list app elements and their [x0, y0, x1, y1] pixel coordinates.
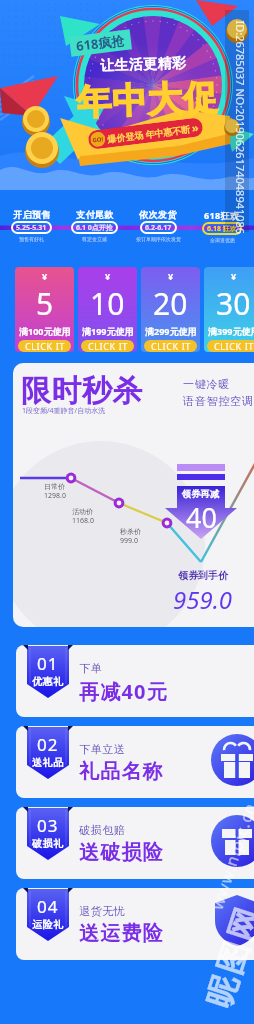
staticText: 04 — [37, 895, 59, 918]
button[interactable]: ¥ — [141, 267, 200, 352]
button[interactable] — [16, 807, 254, 879]
staticText: ¥ — [168, 270, 174, 282]
staticText: 02 — [37, 733, 59, 756]
button[interactable]: 支付尾款 — [63, 209, 126, 242]
staticText: 6.1 0点开抢 — [76, 223, 113, 233]
staticText: 领券到手价 — [178, 569, 228, 582]
staticText: 限时秒杀 — [21, 372, 143, 410]
staticText: 1298.0 — [44, 491, 66, 501]
other: 送运费险 — [211, 894, 254, 946]
staticText: 日常价 — [44, 482, 65, 491]
staticText: CLICK IT — [214, 340, 254, 352]
other: 礼品名称 — [211, 734, 254, 786]
staticText: GO! — [92, 135, 104, 144]
staticText: 6.18 狂欢 — [207, 224, 237, 234]
button[interactable]: ¥ — [78, 267, 137, 352]
staticText: 满299元使用 — [145, 325, 197, 337]
staticText: 破损礼 — [32, 837, 65, 850]
staticText: 618疯抢 — [75, 31, 126, 55]
staticText: 支付尾款 — [76, 209, 114, 220]
staticText: 让生活更精彩 — [100, 54, 187, 75]
staticText: 959.0 — [173, 583, 233, 616]
button[interactable]: 开启预售 — [0, 209, 63, 242]
staticText: ¥ — [105, 270, 111, 282]
staticText: 03 — [37, 814, 59, 837]
staticText: 按订单顺序依次发货 — [136, 236, 181, 242]
button[interactable] — [16, 645, 254, 717]
staticText: 全渠道优惠 — [210, 237, 235, 243]
button[interactable]: ¥ — [15, 267, 74, 352]
staticText: 领券再减 — [182, 488, 220, 499]
staticText: ¥ — [42, 270, 48, 282]
staticText: 下单 — [79, 661, 102, 675]
staticText: 下单立送 — [79, 742, 125, 756]
button[interactable] — [16, 888, 254, 960]
button[interactable]: 618狂欢 — [190, 209, 254, 243]
staticText: 618狂欢 — [204, 209, 240, 221]
staticText: 满100元使用 — [19, 325, 71, 337]
staticText: CLICK IT — [88, 340, 128, 352]
staticText: 6.2-6.17 — [145, 223, 172, 233]
staticText: 30 — [216, 283, 251, 324]
other: 送破损险 — [211, 815, 254, 867]
staticText: 礼品名称 — [79, 759, 164, 784]
staticText: 活动价 — [72, 507, 93, 516]
staticText: www.nipic.cn — [206, 800, 254, 912]
staticText: CLICK IT — [151, 340, 191, 352]
staticText: 预售有好礼 — [19, 236, 44, 242]
staticText: 送礼品 — [32, 756, 65, 769]
staticText: CLICK IT — [25, 340, 65, 352]
staticText: 1168.0 — [72, 516, 94, 526]
staticText: 999.0 — [120, 536, 138, 546]
staticText: ¥ — [231, 270, 237, 282]
staticText: 年中大促 — [75, 75, 219, 124]
staticText: 破损包赔 — [79, 823, 125, 837]
staticText: 再减40元 — [79, 678, 168, 705]
button[interactable]: ¥ — [204, 267, 254, 352]
staticText: 送破损险 — [79, 840, 164, 865]
button[interactable]: 依次发货 — [126, 209, 190, 242]
button[interactable] — [16, 726, 254, 798]
staticText: 开启预售 — [13, 209, 51, 220]
staticText: 5 — [36, 283, 54, 324]
staticText: 满199元使用 — [82, 325, 134, 337]
staticText: 运险礼 — [32, 918, 65, 931]
staticText: 昵图网 — [197, 902, 254, 1014]
staticText: 20 — [153, 283, 188, 324]
staticText: 秒杀价 — [120, 527, 141, 536]
staticText: 爆价登场 年中惠不断 — [107, 122, 191, 145]
staticText: 5.25-5.31 — [16, 223, 47, 233]
staticText: 退货无忧 — [79, 904, 125, 918]
staticText: 尊定金立减 — [82, 236, 107, 242]
staticText: 1段变频/4重静音/自动水洗 — [22, 406, 106, 416]
staticText: 满399元使用 — [208, 325, 254, 337]
staticText: 依次发货 — [139, 209, 177, 220]
staticText: 送运费险 — [79, 921, 164, 946]
staticText: 一键冷暖 — [183, 377, 231, 391]
staticText: 40 — [186, 499, 217, 536]
staticText: 01 — [37, 652, 59, 675]
staticText: 优惠礼 — [32, 675, 65, 688]
staticText: ID:26785037 NO:20190626174048941086 — [232, 20, 247, 234]
staticText: 语音智控空调 — [183, 394, 254, 408]
staticText: » — [191, 119, 199, 135]
staticText: 10 — [90, 283, 125, 324]
